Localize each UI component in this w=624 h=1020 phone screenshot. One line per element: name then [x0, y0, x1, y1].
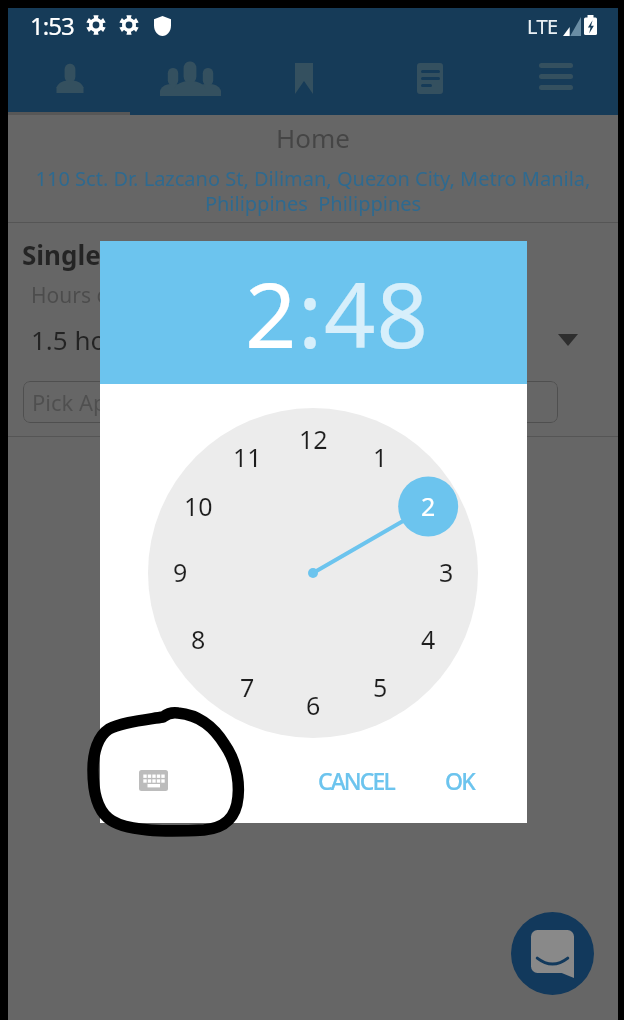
button[interactable]: 10 [176, 484, 220, 528]
button[interactable]: Open chat [511, 912, 594, 995]
staticText: 48 [324, 252, 429, 375]
button[interactable]: 4 [406, 617, 450, 661]
staticText: 7 [240, 670, 255, 704]
button[interactable]: Pick Appointment Date [23, 381, 558, 423]
button[interactable]: 2 [245, 252, 298, 375]
button[interactable]: 11 [225, 435, 269, 479]
staticText: 4 [421, 622, 436, 656]
staticText: Pick Appointment Date [32, 387, 270, 417]
staticText: 8 [191, 622, 206, 656]
button[interactable]: 8 [176, 617, 220, 661]
button[interactable]: Bookmarks [258, 53, 368, 113]
button[interactable]: 12 [291, 417, 335, 461]
button[interactable]: 6 [291, 683, 335, 727]
staticText: 3 [439, 555, 454, 589]
button[interactable]: 9 [158, 550, 202, 594]
button[interactable]: 48 [324, 252, 429, 375]
button[interactable]: OK [433, 759, 485, 801]
staticText: 5 [373, 670, 388, 704]
staticText: Home [276, 120, 350, 154]
button[interactable]: Documents [376, 53, 496, 113]
button[interactable]: 1 [358, 435, 402, 479]
staticText: OK [445, 765, 474, 796]
staticText: Single Day [22, 237, 157, 272]
staticText: CANCEL [318, 765, 394, 796]
button[interactable]: Profile [16, 53, 130, 113]
button[interactable]: Menu [498, 53, 618, 113]
staticText: Hours of service [31, 281, 191, 310]
staticText: LTE [527, 13, 558, 40]
staticText: : [298, 252, 324, 375]
button[interactable]: 7 [225, 665, 269, 709]
button[interactable]: Groups [136, 53, 256, 113]
staticText: 1:53 [30, 9, 74, 42]
staticText: 2 [421, 489, 436, 523]
button[interactable]: Switch to keyboard input [131, 758, 175, 802]
staticText: 11 [233, 440, 262, 474]
staticText: 9 [173, 555, 188, 589]
staticText: 1.5 hours [31, 322, 146, 357]
staticText: 2 [245, 252, 298, 375]
button[interactable]: 5 [358, 665, 402, 709]
staticText: 1 [373, 440, 388, 474]
button[interactable]: 2 [406, 484, 450, 528]
button[interactable]: CANCEL [304, 759, 408, 801]
staticText: 12 [299, 422, 328, 456]
staticText: 6 [306, 688, 321, 722]
button[interactable]: 3 [424, 550, 468, 594]
staticText: 10 [184, 489, 213, 523]
staticText: 110 Sct. Dr. Lazcano St, Diliman, Quezon… [22, 165, 604, 217]
